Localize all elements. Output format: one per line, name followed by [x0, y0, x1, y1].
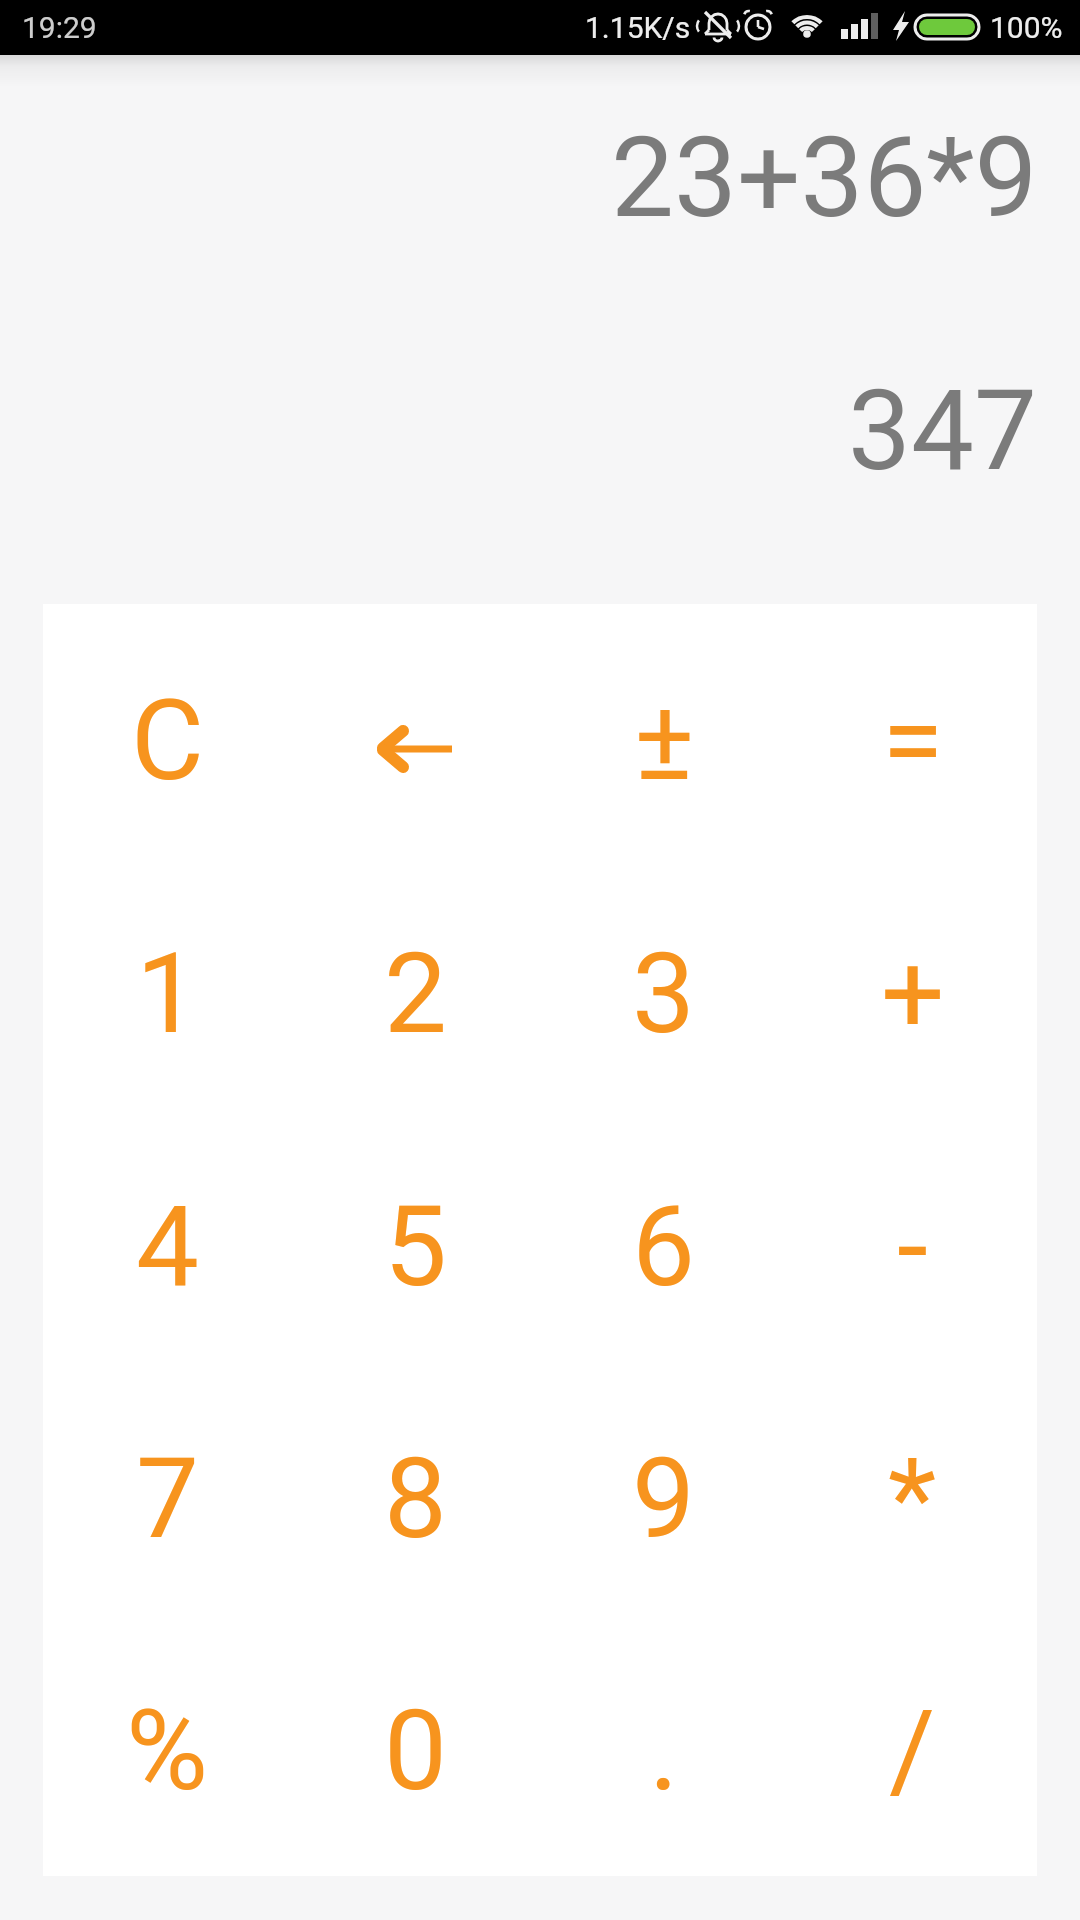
- button[interactable]: 5: [291, 1120, 539, 1372]
- button[interactable]: -: [788, 1120, 1037, 1372]
- button[interactable]: C: [43, 614, 291, 867]
- button[interactable]: 0: [291, 1624, 539, 1876]
- staticText: 2: [384, 928, 447, 1059]
- button[interactable]: 6: [539, 1120, 788, 1372]
- staticText: ±: [634, 675, 694, 806]
- staticText: =: [882, 675, 944, 806]
- staticText: 9: [632, 1433, 695, 1564]
- button[interactable]: 2: [291, 867, 539, 1120]
- staticText: /: [889, 1685, 936, 1816]
- staticText: 1: [136, 928, 199, 1059]
- staticText: 100%: [990, 10, 1063, 45]
- button[interactable]: [291, 614, 539, 867]
- button[interactable]: /: [788, 1624, 1037, 1876]
- button[interactable]: 4: [43, 1120, 291, 1372]
- staticText: 8: [384, 1433, 447, 1564]
- staticText: +: [881, 928, 945, 1059]
- button[interactable]: 3: [539, 867, 788, 1120]
- button[interactable]: 9: [539, 1372, 788, 1624]
- staticText: 0: [384, 1685, 447, 1816]
- button[interactable]: =: [788, 614, 1037, 867]
- staticText: 4: [136, 1181, 199, 1312]
- staticText: 6: [632, 1181, 695, 1312]
- button[interactable]: 1: [43, 867, 291, 1120]
- button[interactable]: +: [788, 867, 1037, 1120]
- staticText: *: [888, 1433, 937, 1564]
- staticText: .: [649, 1685, 679, 1816]
- button[interactable]: ±: [539, 614, 788, 867]
- staticText: -: [897, 1181, 928, 1312]
- staticText: %: [126, 1685, 209, 1816]
- staticText: 5: [384, 1181, 447, 1312]
- staticText: 1.15K/s: [585, 10, 691, 45]
- button[interactable]: 8: [291, 1372, 539, 1624]
- staticText: 347: [848, 365, 1037, 496]
- button[interactable]: .: [539, 1624, 788, 1876]
- staticText: 23+36*9: [611, 112, 1038, 243]
- button[interactable]: *: [788, 1372, 1037, 1624]
- staticText: C: [131, 675, 204, 806]
- button[interactable]: 7: [43, 1372, 291, 1624]
- staticText: 3: [632, 928, 695, 1059]
- staticText: 19:29: [22, 10, 97, 45]
- button[interactable]: %: [43, 1624, 291, 1876]
- staticText: 7: [136, 1433, 199, 1564]
